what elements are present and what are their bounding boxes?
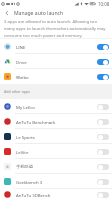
staticText: AnTuTu Benchmark [16, 119, 56, 125]
button[interactable]: 手机防盗 [0, 159, 112, 174]
button[interactable]: Weibo [0, 69, 112, 84]
button[interactable]: AnTuTu 3DBench [0, 189, 112, 200]
staticText: Drive [16, 59, 27, 65]
button[interactable]: Le Sports [0, 129, 112, 144]
staticText: AnTuTu 3DBench [16, 192, 51, 198]
button[interactable]: Toggle off [97, 164, 109, 170]
button[interactable]: AnTuTu Benchmark [0, 114, 112, 129]
staticText: My LeEco [16, 104, 35, 110]
staticText: Manage auto launch [14, 10, 64, 17]
button[interactable]: LeVite [0, 144, 112, 159]
button[interactable]: LINE [0, 39, 112, 54]
staticText: Add other apps [4, 89, 30, 94]
button[interactable]: Toggle off [97, 119, 109, 125]
staticText: Le Sports [16, 134, 35, 140]
button[interactable]: Geekbench 3 [0, 174, 112, 189]
staticText: LeVite [16, 149, 29, 155]
staticText: 10:08 [98, 1, 110, 7]
staticText: Geekbench 3 [16, 179, 43, 185]
button[interactable]: Toggle off [97, 134, 109, 140]
button[interactable]: My LeEco [0, 99, 112, 114]
staticText: 3 apps are allowed to auto launch. Allow… [4, 19, 108, 38]
button[interactable]: Toggle off [97, 179, 109, 185]
button[interactable]: Toggle off [97, 149, 109, 155]
button[interactable]: Back [0, 7, 14, 19]
button[interactable]: Drive [0, 54, 112, 69]
button[interactable]: Toggle off [97, 104, 109, 110]
button[interactable]: Toggle on [97, 44, 109, 50]
staticText: 手机防盗 [16, 164, 34, 169]
button[interactable]: Toggle on [97, 74, 109, 80]
button[interactable]: Toggle on [97, 59, 109, 65]
staticText: LINE [16, 44, 26, 50]
button[interactable]: Toggle off [97, 192, 109, 198]
staticText: Weibo [16, 74, 29, 80]
